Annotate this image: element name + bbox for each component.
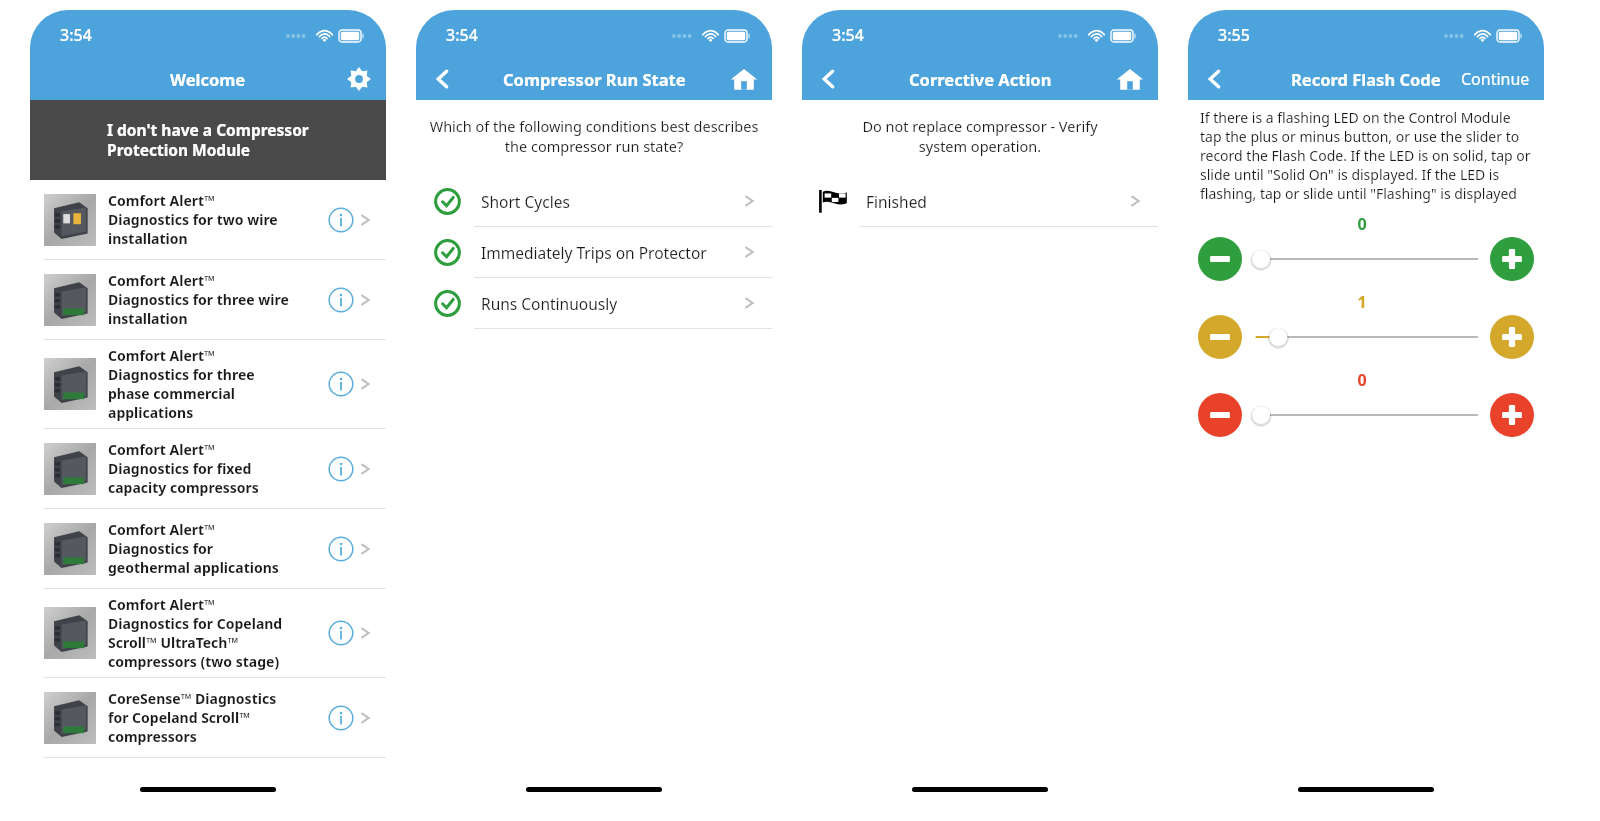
staticText: Welcome xyxy=(170,68,246,90)
button[interactable]: Increase xyxy=(1490,237,1534,281)
button[interactable]: Info xyxy=(328,620,354,646)
staticText: 0 xyxy=(1188,213,1536,235)
staticText: Record Flash Code xyxy=(1291,68,1441,90)
button[interactable]: Info xyxy=(328,371,354,397)
other: Back xyxy=(814,64,844,94)
button[interactable]: Info xyxy=(328,207,354,233)
other: Home xyxy=(730,65,758,93)
staticText: Short Cycles xyxy=(481,191,744,212)
staticText: Comfort Alert™ Diagnostics for geotherma… xyxy=(108,520,322,577)
staticText: Comfort Alert™ Diagnostics for Copeland … xyxy=(108,595,322,671)
staticText: Compressor Run State xyxy=(503,68,686,90)
button[interactable]: Info xyxy=(328,287,354,313)
staticText: I don't have a Compressor Protection Mod… xyxy=(107,119,309,161)
staticText: Corrective Action xyxy=(909,68,1052,90)
button[interactable]: Settings xyxy=(346,66,372,92)
staticText: 0 xyxy=(1188,369,1536,391)
button[interactable]: CoreSense™ Diagnostics for Copeland Scro… xyxy=(30,678,386,757)
button[interactable]: Back xyxy=(1200,64,1230,94)
button[interactable]: Comfort Alert™ Diagnostics for fixed cap… xyxy=(30,429,386,508)
staticText: Comfort Alert™ Diagnostics for three wir… xyxy=(108,271,322,328)
staticText: Finished xyxy=(866,191,1130,212)
button[interactable]: Info xyxy=(328,456,354,482)
button[interactable]: Comfort Alert™ Diagnostics for three pha… xyxy=(30,340,386,428)
staticText: 3:54 xyxy=(446,24,478,46)
button[interactable]: Back xyxy=(428,64,458,94)
button[interactable]: Back xyxy=(814,64,844,94)
staticText: CoreSense™ Diagnostics for Copeland Scro… xyxy=(108,689,322,746)
staticText: Comfort Alert™ Diagnostics for two wire … xyxy=(108,191,322,248)
button[interactable] xyxy=(1252,319,1480,355)
button[interactable]: Comfort Alert™ Diagnostics for geotherma… xyxy=(30,509,386,588)
button[interactable]: Immediately Trips on Protector xyxy=(416,227,772,277)
button[interactable]: Info xyxy=(328,705,354,731)
staticText: Continue xyxy=(1461,68,1530,90)
staticText: 3:54 xyxy=(832,24,864,46)
button[interactable]: Comfort Alert™ Diagnostics for three wir… xyxy=(30,260,386,339)
button[interactable]: Continue xyxy=(1461,68,1530,90)
staticText: Comfort Alert™ Diagnostics for fixed cap… xyxy=(108,440,322,497)
button[interactable] xyxy=(1252,241,1480,277)
button[interactable]: Home xyxy=(730,65,758,93)
staticText: If there is a flashing LED on the Contro… xyxy=(1200,108,1532,203)
button[interactable]: Short Cycles xyxy=(416,176,772,226)
button[interactable]: Home xyxy=(1116,65,1144,93)
button[interactable]: Increase xyxy=(1490,393,1534,437)
other: Back xyxy=(1200,64,1230,94)
staticText: Comfort Alert™ Diagnostics for three pha… xyxy=(108,346,322,422)
other: Home xyxy=(1116,65,1144,93)
button[interactable]: Comfort Alert™ Diagnostics for Copeland … xyxy=(30,589,386,677)
staticText: Which of the following conditions best d… xyxy=(426,116,762,156)
button[interactable]: Finished xyxy=(802,176,1158,226)
other: Back xyxy=(428,64,458,94)
staticText: 3:55 xyxy=(1218,24,1250,46)
other: Settings xyxy=(346,66,372,92)
button[interactable]: Comfort Alert™ Diagnostics for two wire … xyxy=(30,180,386,259)
button[interactable]: Decrease xyxy=(1198,393,1242,437)
staticText: Runs Continuously xyxy=(481,293,744,314)
button[interactable]: Increase xyxy=(1490,315,1534,359)
button[interactable]: Decrease xyxy=(1198,237,1242,281)
button[interactable]: I don't have a Compressor Protection Mod… xyxy=(30,100,386,180)
staticText: 1 xyxy=(1188,291,1536,313)
button[interactable]: Runs Continuously xyxy=(416,278,772,328)
button[interactable]: Decrease xyxy=(1198,315,1242,359)
button[interactable]: Info xyxy=(328,536,354,562)
staticText: Do not replace compressor - Verify syste… xyxy=(816,116,1144,156)
staticText: Immediately Trips on Protector xyxy=(481,242,744,263)
staticText: 3:54 xyxy=(60,24,92,46)
button[interactable] xyxy=(1252,397,1480,433)
